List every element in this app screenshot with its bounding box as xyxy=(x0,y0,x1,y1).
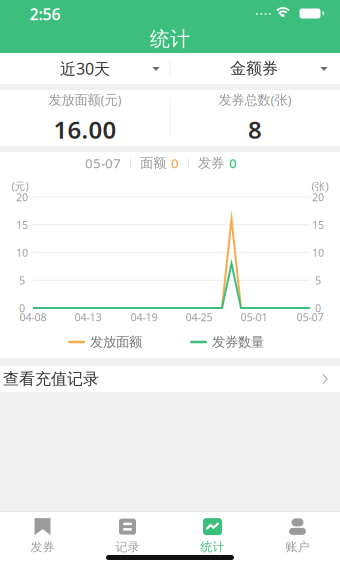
button[interactable]: 近30天 xyxy=(0,53,169,84)
staticText: 发券 xyxy=(30,540,54,554)
button[interactable]: 金额券 xyxy=(171,53,340,84)
staticText: 10 xyxy=(16,245,28,260)
staticText: 金额券 xyxy=(230,59,278,78)
staticText: 05-07 xyxy=(296,310,323,324)
staticText: 发放面额(元) xyxy=(48,91,121,108)
staticText: 查看充值记录 xyxy=(3,369,99,389)
staticText: 统计 xyxy=(150,27,190,51)
staticText: 发券 xyxy=(198,155,224,171)
button[interactable]: 查看充值记录 xyxy=(0,366,340,392)
staticText: 20 xyxy=(16,190,28,204)
button[interactable]: 账户 xyxy=(255,513,340,559)
button[interactable]: 统计 xyxy=(170,513,255,559)
staticText: 04-25 xyxy=(185,310,212,324)
staticText: 面额 xyxy=(140,155,166,171)
button[interactable]: 记录 xyxy=(85,513,170,559)
staticText: 记录 xyxy=(115,540,139,554)
staticText: 近30天 xyxy=(60,58,110,79)
staticText: 8 xyxy=(248,113,262,145)
staticText: 5 xyxy=(19,273,25,287)
staticText: 发放面额 xyxy=(90,334,142,350)
staticText: 发券总数(张) xyxy=(218,91,291,108)
staticText: 0 xyxy=(315,301,321,315)
staticText: 账户 xyxy=(285,540,309,554)
staticText: 10 xyxy=(312,245,324,260)
staticText: 16.00 xyxy=(53,113,116,145)
staticText: 20 xyxy=(312,190,324,204)
staticText: 15 xyxy=(312,218,324,232)
staticText: 04-19 xyxy=(130,310,157,324)
staticText: 05-07 xyxy=(85,154,121,172)
staticText: (元) xyxy=(11,179,28,193)
staticText: 5 xyxy=(315,273,321,287)
staticText: 15 xyxy=(16,218,28,232)
staticText: 2:56 xyxy=(29,3,60,25)
staticText: 05-01 xyxy=(240,310,267,324)
staticText: 04-08 xyxy=(19,310,46,324)
staticText: 04-13 xyxy=(74,310,101,324)
staticText: (张) xyxy=(311,179,328,193)
staticText: 统计 xyxy=(200,540,224,554)
staticText: 发券数量 xyxy=(212,334,264,350)
staticText: 0 xyxy=(171,154,179,172)
button[interactable]: 发券 xyxy=(0,513,85,559)
staticText: 0 xyxy=(229,154,237,172)
staticText: 0 xyxy=(19,301,25,315)
